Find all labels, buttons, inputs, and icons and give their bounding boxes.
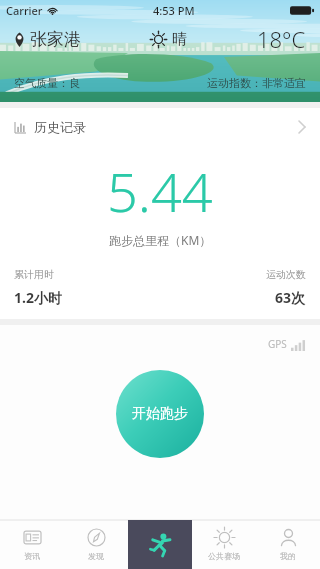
- staticText: 资讯: [24, 551, 40, 561]
- staticText: 我的: [280, 551, 296, 561]
- button[interactable]: 发现: [64, 520, 128, 569]
- button[interactable]: 公共赛场: [192, 520, 256, 569]
- button[interactable]: 资讯: [0, 520, 64, 569]
- staticText: 公共赛场: [208, 551, 240, 561]
- button[interactable]: 开始跑步: [116, 370, 204, 458]
- staticText: Carrier: [6, 3, 43, 18]
- staticText: 历史记录: [34, 119, 86, 135]
- button[interactable]: 历史记录: [0, 108, 320, 146]
- staticText: 18°C: [257, 24, 306, 54]
- staticText: 张家港: [30, 29, 81, 50]
- staticText: 开始跑步: [132, 405, 188, 423]
- staticText: 4:53 PM: [153, 3, 195, 18]
- staticText: 运动次数: [266, 268, 306, 281]
- staticText: 空气质量：良: [14, 76, 80, 90]
- staticText: 63次: [275, 288, 306, 307]
- button[interactable]: 我的: [256, 520, 320, 569]
- staticText: 累计用时: [14, 268, 54, 281]
- staticText: 跑步总里程（KM）: [109, 232, 212, 248]
- staticText: 5.44: [107, 154, 213, 228]
- button[interactable]: 跑步: [128, 520, 192, 569]
- staticText: 1.2小时: [14, 288, 62, 307]
- staticText: 晴: [172, 30, 187, 49]
- staticText: GPS: [268, 337, 287, 351]
- staticText: 运动指数：非常适宜: [207, 76, 306, 90]
- staticText: 发现: [88, 551, 104, 561]
